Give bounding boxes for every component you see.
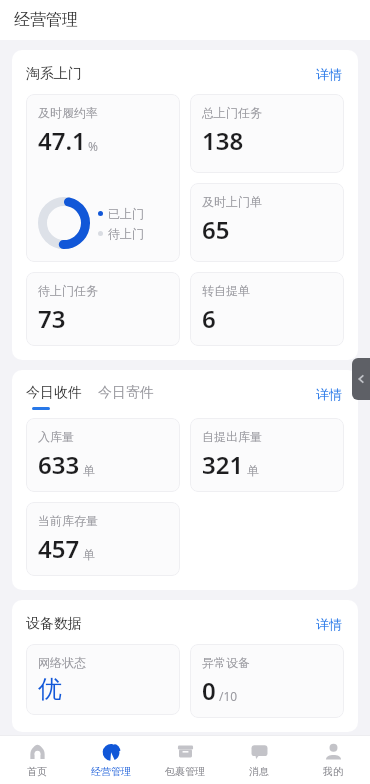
staticText: 当前库存量 bbox=[38, 513, 98, 528]
staticText: 我的 bbox=[323, 765, 343, 778]
staticText: 经营管理 bbox=[91, 765, 131, 778]
staticText: 633 bbox=[38, 448, 80, 481]
staticText: 消息 bbox=[249, 765, 269, 778]
staticText: /10 bbox=[219, 688, 238, 704]
button[interactable]: 展开侧边栏 bbox=[352, 358, 370, 400]
staticText: 详情 bbox=[316, 616, 342, 632]
button[interactable]: 首页 bbox=[0, 735, 74, 784]
staticText: 异常设备 bbox=[202, 655, 250, 670]
button[interactable]: 当前库存量 bbox=[26, 502, 180, 576]
staticText: 65 bbox=[202, 213, 230, 246]
button[interactable]: 待上门任务 bbox=[26, 272, 180, 346]
button[interactable]: 转自提单 bbox=[190, 272, 344, 346]
staticText: 入库量 bbox=[38, 429, 74, 444]
staticText: 总上门任务 bbox=[202, 105, 262, 120]
staticText: 单 bbox=[83, 547, 95, 562]
button[interactable]: 消息 bbox=[222, 735, 296, 784]
button[interactable]: 经营管理 bbox=[74, 735, 148, 784]
staticText: 首页 bbox=[27, 765, 47, 778]
staticText: 今日收件 bbox=[26, 384, 82, 402]
button[interactable]: 异常设备 bbox=[190, 644, 344, 718]
staticText: 网络状态 bbox=[38, 655, 86, 670]
button[interactable]: 今日寄件 bbox=[98, 384, 154, 402]
button[interactable]: 今日收件 bbox=[26, 384, 82, 410]
staticText: 待上门任务 bbox=[38, 283, 98, 298]
staticText: 及时履约率 bbox=[38, 105, 98, 120]
button[interactable]: 详情 bbox=[314, 384, 344, 404]
staticText: 73 bbox=[38, 302, 66, 335]
button[interactable]: 及时上门单 bbox=[190, 183, 344, 262]
staticText: 已上门 bbox=[108, 206, 144, 221]
staticText: 47.1 bbox=[38, 124, 86, 157]
button[interactable]: 及时履约率 bbox=[26, 94, 180, 262]
staticText: 457 bbox=[38, 532, 80, 565]
button[interactable]: 总上门任务 bbox=[190, 94, 344, 173]
staticText: 及时上门单 bbox=[202, 194, 262, 209]
staticText: 自提出库量 bbox=[202, 429, 262, 444]
button[interactable]: 详情 bbox=[314, 64, 344, 84]
staticText: 转自提单 bbox=[202, 283, 250, 298]
button[interactable]: 入库量 bbox=[26, 418, 180, 492]
staticText: 经营管理 bbox=[14, 10, 78, 30]
staticText: 今日寄件 bbox=[98, 384, 154, 402]
button[interactable]: 包裹管理 bbox=[148, 735, 222, 784]
staticText: % bbox=[88, 138, 98, 154]
staticText: 138 bbox=[202, 124, 244, 157]
staticText: 321 bbox=[202, 448, 244, 481]
staticText: 设备数据 bbox=[26, 615, 82, 633]
staticText: 6 bbox=[202, 302, 216, 335]
staticText: 优 bbox=[38, 674, 62, 704]
staticText: 单 bbox=[83, 463, 95, 478]
staticText: 详情 bbox=[316, 386, 342, 402]
button[interactable]: 我的 bbox=[296, 735, 370, 784]
button[interactable]: 自提出库量 bbox=[190, 418, 344, 492]
staticText: 淘系上门 bbox=[26, 65, 82, 83]
staticText: 包裹管理 bbox=[165, 765, 205, 778]
staticText: 0 bbox=[202, 674, 216, 707]
staticText: 待上门 bbox=[108, 226, 144, 241]
staticText: 单 bbox=[247, 463, 259, 478]
button[interactable]: 网络状态 bbox=[26, 644, 180, 715]
button[interactable]: 详情 bbox=[314, 614, 344, 634]
staticText: 详情 bbox=[316, 66, 342, 82]
